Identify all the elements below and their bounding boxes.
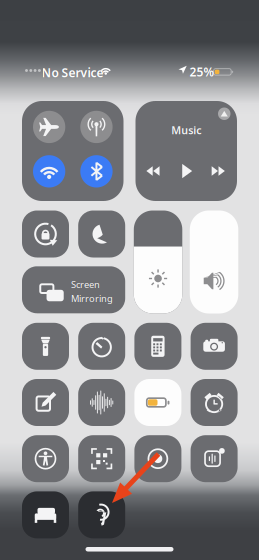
button[interactable]: Rotation Lock xyxy=(22,210,69,257)
button[interactable]: Accessibility xyxy=(22,435,69,482)
button[interactable]: Timer xyxy=(78,323,125,370)
button[interactable]: Bluetooth xyxy=(80,155,113,187)
staticText: Screen xyxy=(71,278,100,291)
button[interactable]: Camera xyxy=(191,323,238,370)
button[interactable]: Calculator xyxy=(134,323,181,370)
staticText: Music xyxy=(171,123,201,137)
button[interactable]: Screen Mirroring xyxy=(22,266,125,313)
button[interactable]: Code Scanner xyxy=(78,435,125,482)
button[interactable]: Flashlight xyxy=(22,323,69,370)
button[interactable]: Previous Track xyxy=(146,164,160,178)
button[interactable]: Hearing xyxy=(78,491,125,538)
button[interactable]: Play xyxy=(179,163,194,179)
button[interactable]: Voice Memos xyxy=(78,379,125,426)
button[interactable]: Sleep Mode xyxy=(22,491,69,538)
button[interactable]: AirPlay xyxy=(218,107,230,120)
button[interactable]: Sound Recognition xyxy=(191,435,238,482)
button[interactable]: Screen Recording xyxy=(134,435,181,482)
staticText: No Service xyxy=(41,65,103,80)
button[interactable]: Cellular Data xyxy=(80,111,113,143)
staticText: Mirroring xyxy=(71,292,113,305)
button[interactable]: Alarm xyxy=(191,379,238,426)
button[interactable]: Notes xyxy=(22,379,69,426)
button[interactable]: Airplane Mode xyxy=(33,111,65,143)
button[interactable]: Do Not Disturb xyxy=(78,210,125,257)
button[interactable]: Brightness xyxy=(134,210,182,313)
button[interactable]: Volume xyxy=(190,210,238,313)
button[interactable]: Next Track xyxy=(211,164,225,178)
staticText: 25% xyxy=(189,64,214,80)
button[interactable]: Wi-Fi xyxy=(33,155,65,187)
button[interactable]: Low Power Mode xyxy=(134,379,181,426)
